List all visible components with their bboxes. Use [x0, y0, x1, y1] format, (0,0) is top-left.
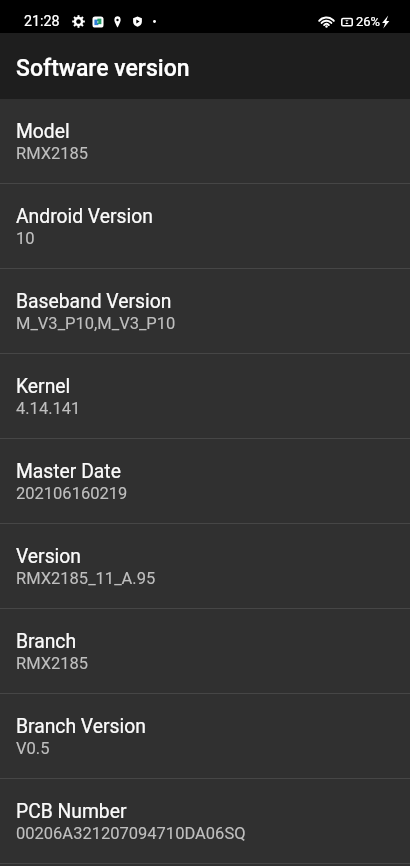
staticText: PCB Number — [16, 800, 127, 823]
staticText: Version — [16, 545, 81, 568]
staticText: RMX2185_11_A.95 — [16, 569, 156, 588]
button[interactable]: Version — [0, 524, 410, 608]
staticText: 202106160219 — [16, 484, 128, 503]
other: More notifications — [151, 18, 158, 25]
other: Wi-Fi — [319, 16, 334, 28]
staticText: Branch — [16, 630, 77, 653]
staticText: Branch Version — [16, 715, 146, 738]
staticText: Android Version — [16, 205, 153, 228]
button[interactable]: PCB Number — [0, 779, 410, 863]
button[interactable]: Model — [0, 99, 410, 183]
other: Screen cast — [341, 16, 353, 28]
other: Location — [114, 16, 121, 28]
staticText: 21:28 — [24, 13, 60, 30]
staticText: M_V3_P10,M_V3_P10 — [16, 314, 176, 333]
staticText: Baseband Version — [16, 290, 172, 313]
staticText: Kernel — [16, 375, 71, 398]
button[interactable]: Kernel — [0, 354, 410, 438]
button[interactable]: Branch Version — [0, 694, 410, 778]
other: Charging — [381, 15, 390, 29]
staticText: Software version — [16, 55, 190, 82]
other: Security — [132, 16, 143, 27]
other: Settings — [73, 16, 84, 27]
staticText: RMX2185 — [16, 654, 89, 673]
button[interactable]: Master Date — [0, 439, 410, 523]
staticText: 26% — [356, 14, 381, 29]
staticText: RMX2185 — [16, 144, 89, 163]
button[interactable]: Baseband Version — [0, 269, 410, 353]
staticText: 10 — [16, 229, 35, 248]
other: App notification — [92, 16, 104, 28]
staticText: V0.5 — [16, 739, 50, 758]
button[interactable]: Branch — [0, 609, 410, 693]
staticText: Model — [16, 120, 70, 143]
staticText: 00206A321207094710DA06SQ — [16, 824, 246, 843]
staticText: Master Date — [16, 460, 121, 483]
button[interactable]: Android Version — [0, 184, 410, 268]
staticText: 4.14.141 — [16, 399, 81, 418]
